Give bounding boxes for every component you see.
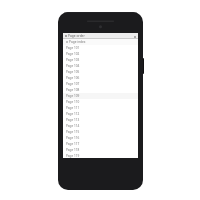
button[interactable]: Page 105 bbox=[63, 69, 138, 75]
staticText: Page index bbox=[69, 40, 86, 44]
button[interactable]: Page 113 bbox=[63, 117, 138, 123]
button[interactable]: Page 119 bbox=[63, 153, 138, 158]
button[interactable]: Page 108 bbox=[63, 87, 138, 93]
staticText: Page 110 bbox=[66, 100, 80, 104]
button[interactable]: Page 118 bbox=[63, 147, 138, 153]
button[interactable]: Page 114 bbox=[63, 123, 138, 129]
staticText: Page 107 bbox=[66, 82, 80, 86]
staticText: Page 113 bbox=[66, 118, 80, 122]
button[interactable]: Page 102 bbox=[63, 51, 138, 57]
staticText: Page 109 bbox=[66, 94, 80, 98]
staticText: Page 114 bbox=[66, 124, 80, 128]
button[interactable]: Close bbox=[133, 35, 136, 38]
button[interactable]: Page 109 bbox=[63, 93, 138, 99]
button[interactable]: Page 106 bbox=[63, 75, 138, 81]
staticText: Page 104 bbox=[66, 64, 80, 68]
button[interactable]: Page 110 bbox=[63, 99, 138, 105]
staticText: Page 119 bbox=[66, 154, 80, 158]
button[interactable]: Page 104 bbox=[63, 63, 138, 69]
staticText: Page 102 bbox=[66, 52, 80, 56]
staticText: Page 105 bbox=[66, 70, 80, 74]
button[interactable]: Page 107 bbox=[63, 81, 138, 87]
button[interactable]: Page order bbox=[63, 33, 138, 39]
button[interactable]: Page 111 bbox=[63, 105, 138, 111]
staticText: Page 112 bbox=[66, 112, 80, 116]
staticText: Page 108 bbox=[66, 88, 80, 92]
staticText: Page 116 bbox=[66, 136, 80, 140]
staticText: Page order bbox=[68, 34, 85, 38]
staticText: Page 115 bbox=[66, 130, 80, 134]
button[interactable]: Page 101 bbox=[63, 45, 138, 51]
staticText: Page 117 bbox=[66, 142, 80, 146]
staticText: Page 103 bbox=[66, 58, 80, 62]
button[interactable]: Page 112 bbox=[63, 111, 138, 117]
button[interactable]: Page index bbox=[63, 39, 138, 45]
staticText: Page 101 bbox=[66, 46, 80, 50]
button[interactable]: Page 116 bbox=[63, 135, 138, 141]
staticText: Page 106 bbox=[66, 76, 80, 80]
button[interactable]: Page 117 bbox=[63, 141, 138, 147]
staticText: Page 118 bbox=[66, 148, 80, 152]
button[interactable]: Page 103 bbox=[63, 57, 138, 63]
button[interactable]: Page 115 bbox=[63, 129, 138, 135]
staticText: Page 111 bbox=[66, 106, 80, 110]
